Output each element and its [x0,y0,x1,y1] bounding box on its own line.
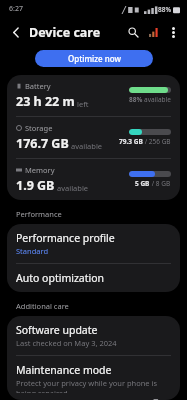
staticText: 88% [158,5,171,14]
staticText: 6:27 [9,4,23,14]
staticText: Memory [25,165,55,175]
staticText: Maintenance mode [16,363,112,377]
staticText: Performance [16,209,62,219]
staticText: available [57,183,89,193]
staticText: Device care [29,24,101,41]
staticText: Additional care [16,301,69,311]
button[interactable]: Memory [7,159,180,200]
staticText: Standard [16,246,49,256]
staticText: left [77,99,89,109]
staticText: Performance profile [16,231,115,245]
staticText: 79.3 GB [119,137,143,146]
button[interactable]: Storage [7,117,180,158]
staticText: 176.7 GB [16,135,69,152]
staticText: / 8 GB [150,179,171,188]
staticText: 1.9 GB [16,177,55,194]
button[interactable]: Maintenance mode [7,356,180,400]
staticText: / 256 GB [143,137,171,146]
staticText: 88% [129,95,144,104]
staticText: Protect your privacy while your phone is… [16,378,171,393]
button[interactable]: Back [6,22,26,42]
staticText: Storage [25,123,53,133]
staticText: available [71,141,103,151]
button[interactable]: Search [123,22,143,42]
button[interactable]: Auto optimization [7,264,180,292]
staticText: 5 GB [135,179,150,188]
button[interactable]: Performance profile [7,224,180,263]
staticText: Optimize now [68,53,121,64]
staticText: 23 h 22 m [16,93,75,110]
staticText: available [144,95,171,104]
button[interactable]: Optimize now [35,50,153,67]
staticText: Auto optimization [16,271,105,285]
button[interactable]: Statistics [143,22,163,42]
button[interactable]: Software update [7,316,180,355]
button[interactable]: More options [163,22,183,42]
staticText: Last checked on May 3, 2024 [16,338,117,348]
staticText: Software update [16,323,98,337]
button[interactable]: Battery [7,75,180,116]
staticText: Battery [25,81,51,91]
